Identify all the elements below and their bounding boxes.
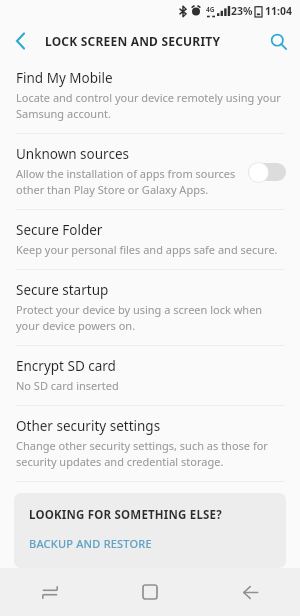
button[interactable]: Secure Folder (0, 210, 300, 269)
button[interactable]: Unknown sources (0, 134, 300, 209)
staticText: No SD card inserted (16, 378, 119, 393)
staticText: Keep your personal files and apps safe a… (16, 242, 278, 257)
button[interactable]: Search (256, 22, 300, 60)
staticText: Protect your device by using a screen lo… (16, 302, 263, 317)
staticText: 23% (231, 4, 253, 18)
button[interactable]: Home (100, 568, 200, 616)
staticText: Other security settings (16, 417, 161, 435)
button[interactable]: Find My Mobile (0, 60, 300, 133)
button[interactable]: BACKUP AND RESTORE (29, 536, 274, 551)
button[interactable]: Recents (0, 568, 100, 616)
staticText: other than Play Store or Galaxy Apps. (16, 182, 209, 197)
staticText: BACKUP AND RESTORE (29, 536, 152, 551)
staticText: Encrypt SD card (16, 357, 116, 375)
button[interactable]: Back (0, 22, 40, 60)
staticText: Locate and control your device remotely … (16, 90, 281, 105)
staticText: LOOKING FOR SOMETHING ELSE? (29, 507, 222, 523)
staticText: Secure startup (16, 281, 109, 299)
staticText: Samsung account. (16, 106, 111, 121)
staticText: LOCK SCREEN AND SECURITY (45, 33, 221, 49)
staticText: 4G (206, 5, 215, 14)
staticText: your device powers on. (16, 318, 136, 333)
staticText: Allow the installation of apps from sour… (16, 166, 236, 181)
staticText: Secure Folder (16, 221, 103, 239)
staticText: Unknown sources (16, 145, 129, 163)
staticText: security updates and credential storage. (16, 454, 224, 469)
button[interactable]: Back (200, 568, 300, 616)
button[interactable]: Encrypt SD card (0, 346, 300, 405)
button[interactable]: Unknown sources toggle (248, 161, 288, 183)
staticText: 11:04 (265, 4, 292, 18)
staticText: Change other security settings, such as … (16, 438, 268, 453)
staticText: Find My Mobile (16, 69, 113, 87)
button[interactable]: Other security settings (0, 406, 300, 481)
button[interactable]: Secure startup (0, 270, 300, 345)
